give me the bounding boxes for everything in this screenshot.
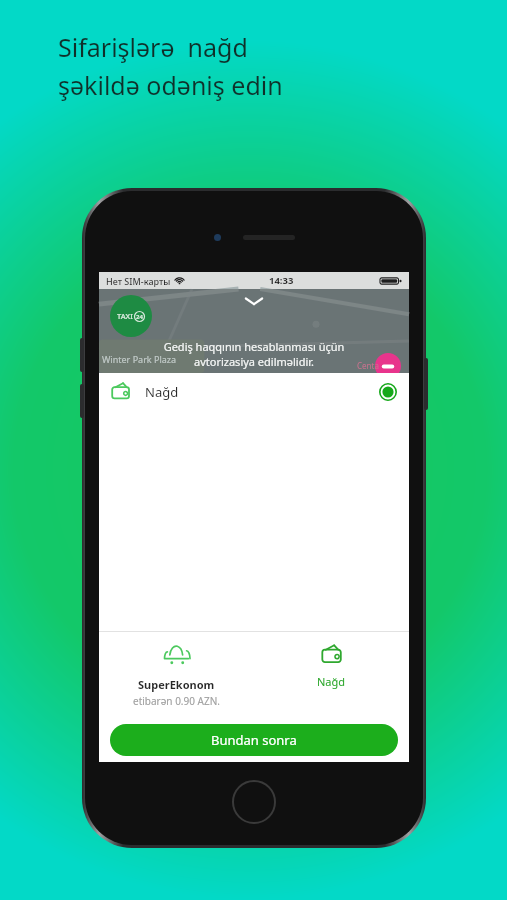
staticText: Centa <box>357 360 379 371</box>
staticText: etibarən 0.90 AZN. <box>133 694 220 708</box>
button[interactable]: Collapse <box>242 294 266 308</box>
button[interactable]: Nağd <box>254 642 409 691</box>
staticText: 24 <box>136 313 143 321</box>
staticText: 14:33 <box>269 274 294 287</box>
staticText: TAXI <box>117 311 133 321</box>
staticText: şəkildə odəniş edin <box>58 68 283 102</box>
staticText: Winter Park Plaza <box>102 353 177 365</box>
button[interactable]: SuperEkonom <box>99 642 254 710</box>
button[interactable]: Bundan sonra <box>110 724 398 756</box>
button[interactable]: Nağd <box>99 373 409 411</box>
staticText: Gediş haqqının hesablanması üçün <box>115 339 393 354</box>
staticText: avtorizasiya edilməlidir. <box>115 354 393 369</box>
staticText: Нет SIM-карты <box>106 275 171 287</box>
staticText: Sifarişlərə nağd <box>58 30 248 64</box>
staticText: Nağd <box>317 674 346 689</box>
staticText: SuperEkonom <box>138 677 215 692</box>
staticText: Bundan sonra <box>211 731 297 749</box>
staticText: Nağd <box>145 383 179 401</box>
